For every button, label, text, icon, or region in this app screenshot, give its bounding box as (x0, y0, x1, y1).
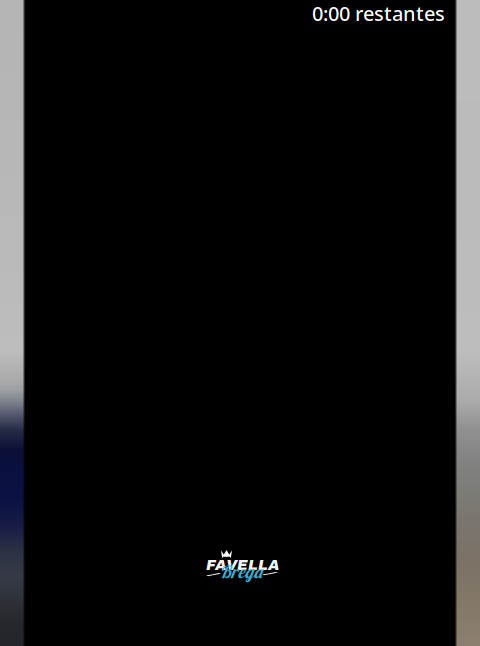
staticText: Brega (220, 561, 262, 583)
staticText: FAVELLA (206, 557, 279, 573)
button[interactable]: Pausar vídeo (25, 0, 455, 646)
staticText: 0:00 restantes (312, 0, 445, 27)
